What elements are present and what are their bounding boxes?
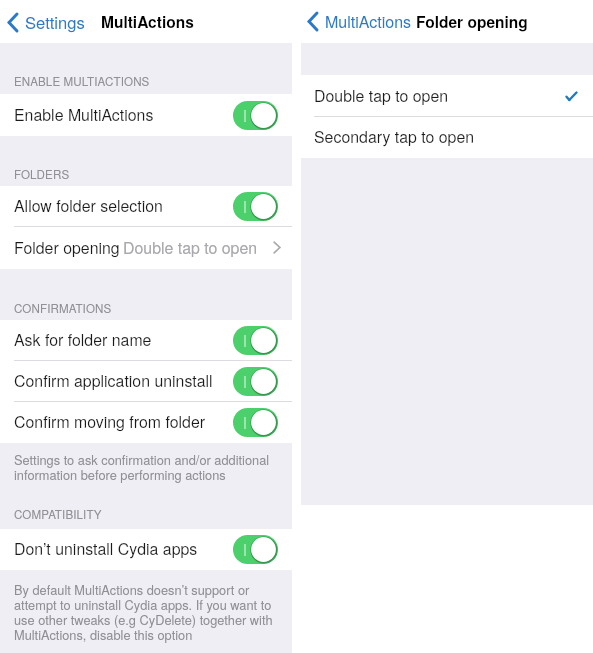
button[interactable]: Allow folder selection — [0, 186, 292, 227]
button[interactable]: Enable MultiActions — [0, 94, 292, 136]
button[interactable]: MultiActions — [307, 10, 412, 33]
other: Selected — [565, 91, 578, 102]
staticText: Settings — [25, 10, 85, 34]
staticText: Enable MultiActions — [14, 103, 154, 126]
button[interactable]: Double tap to open — [301, 75, 593, 117]
staticText: Don’t uninstall Cydia apps — [14, 537, 198, 560]
button[interactable]: Toggle on — [233, 408, 278, 437]
staticText: Double tap to open — [123, 236, 258, 259]
staticText: Ask for folder name — [14, 328, 152, 351]
button[interactable]: Settings — [7, 10, 85, 34]
staticText: Confirm moving from folder — [14, 410, 206, 433]
button[interactable]: Don’t uninstall Cydia apps — [0, 529, 292, 570]
staticText: Confirm application uninstall — [14, 369, 213, 392]
button[interactable]: Secondary tap to open — [301, 117, 593, 158]
staticText: CONFIRMATIONS — [14, 300, 112, 317]
staticText: MultiActions — [101, 11, 194, 33]
staticText: Folder opening — [416, 11, 528, 33]
button[interactable]: Toggle on — [233, 326, 278, 355]
button[interactable]: Toggle on — [233, 535, 278, 564]
staticText: COMPATIBILITY — [14, 506, 102, 523]
staticText: Secondary tap to open — [314, 125, 475, 148]
staticText: Folder opening — [14, 236, 120, 259]
button[interactable]: Confirm moving from folder — [0, 402, 292, 443]
staticText: MultiActions — [325, 10, 412, 33]
button[interactable]: Toggle on — [233, 367, 278, 396]
staticText: Double tap to open — [314, 84, 449, 107]
button[interactable]: Confirm application uninstall — [0, 361, 292, 402]
button[interactable]: Toggle on — [233, 101, 278, 130]
staticText: FOLDERS — [14, 166, 70, 183]
button[interactable]: Folder opening — [0, 227, 292, 269]
staticText: ENABLE MULTIACTIONS — [14, 73, 150, 90]
button[interactable]: Toggle on — [233, 192, 278, 221]
staticText: By default MultiActions doesn’t support … — [14, 580, 273, 644]
staticText: Settings to ask confirmation and/or addi… — [14, 450, 270, 484]
staticText: Allow folder selection — [14, 194, 163, 217]
button[interactable]: Ask for folder name — [0, 320, 292, 361]
